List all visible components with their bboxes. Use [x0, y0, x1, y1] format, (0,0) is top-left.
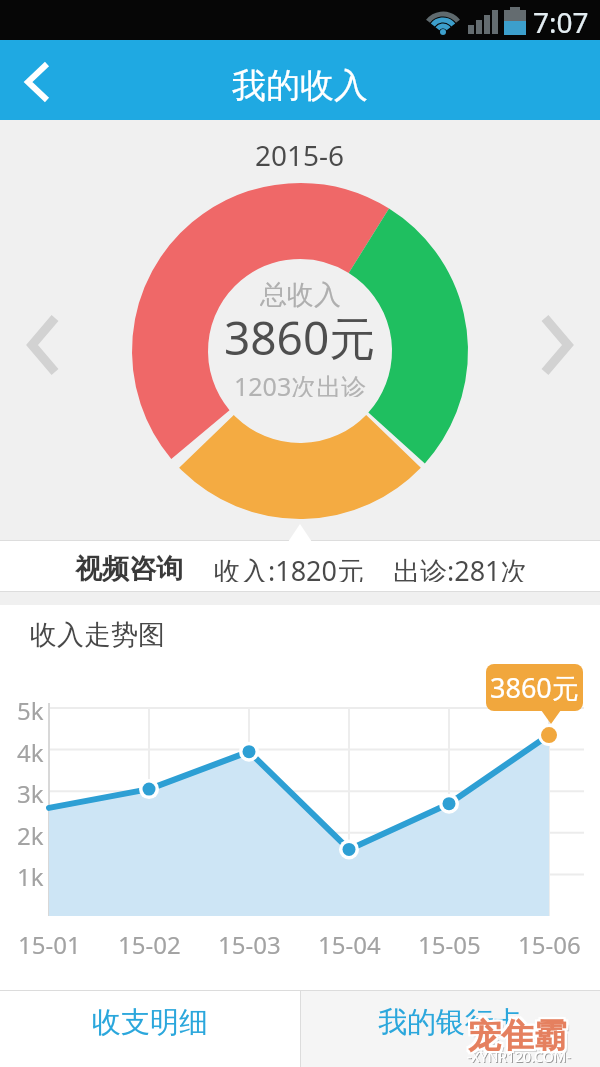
staticText: 宠隹霸 — [466, 1015, 565, 1055]
staticText: 15-05 — [418, 928, 481, 958]
staticText: 宠隹霸 — [466, 1013, 565, 1053]
staticText: 宠隹霸 — [471, 1018, 570, 1058]
staticText: 我的银行卡 — [378, 1004, 523, 1041]
staticText: 15-02 — [118, 928, 181, 958]
staticText: 出诊:281次 — [393, 552, 528, 582]
staticText: 宠隹霸 — [468, 1015, 567, 1055]
staticText: 收入:1820元 — [214, 552, 365, 582]
staticText: -XYNR120.COM- — [468, 1048, 572, 1064]
staticText: -XYNR120.COM- — [467, 1047, 571, 1063]
staticText: 收入走势图 — [30, 618, 165, 650]
staticText: 3860元 — [490, 669, 579, 706]
staticText: 宠隹霸 — [470, 1015, 569, 1055]
button[interactable]: 我的银行卡 — [300, 990, 600, 1054]
staticText: 我的收入 — [232, 64, 368, 104]
staticText: 宠隹霸 — [470, 1013, 569, 1053]
staticText: 7:07 — [533, 3, 589, 37]
staticText: 1203次出诊 — [234, 369, 367, 397]
button[interactable] — [0, 40, 80, 120]
staticText: 宠隹霸 — [466, 1017, 565, 1057]
staticText: 收支明细 — [92, 1004, 208, 1041]
staticText: 宠隹霸 — [468, 1013, 567, 1053]
staticText: 1k — [17, 860, 44, 888]
staticText: 15-01 — [18, 928, 81, 958]
staticText: 2k — [17, 819, 44, 847]
staticText: 15-03 — [218, 928, 281, 958]
staticText: 宠隹霸 — [468, 1017, 567, 1057]
staticText: 2015-6 — [255, 136, 345, 168]
staticText: 4k — [17, 736, 44, 764]
staticText: 15-04 — [318, 928, 381, 958]
staticText: 15-06 — [518, 928, 581, 958]
staticText: 3k — [17, 777, 44, 805]
staticText: 3860元 — [224, 306, 376, 362]
staticText: 视频咨询 — [75, 552, 183, 582]
button[interactable] — [10, 305, 80, 385]
button[interactable]: 收支明细 — [0, 990, 300, 1054]
staticText: 总收入 — [260, 278, 341, 308]
staticText: 5k — [17, 694, 44, 722]
button[interactable] — [520, 305, 590, 385]
staticText: 宠隹霸 — [470, 1017, 569, 1057]
